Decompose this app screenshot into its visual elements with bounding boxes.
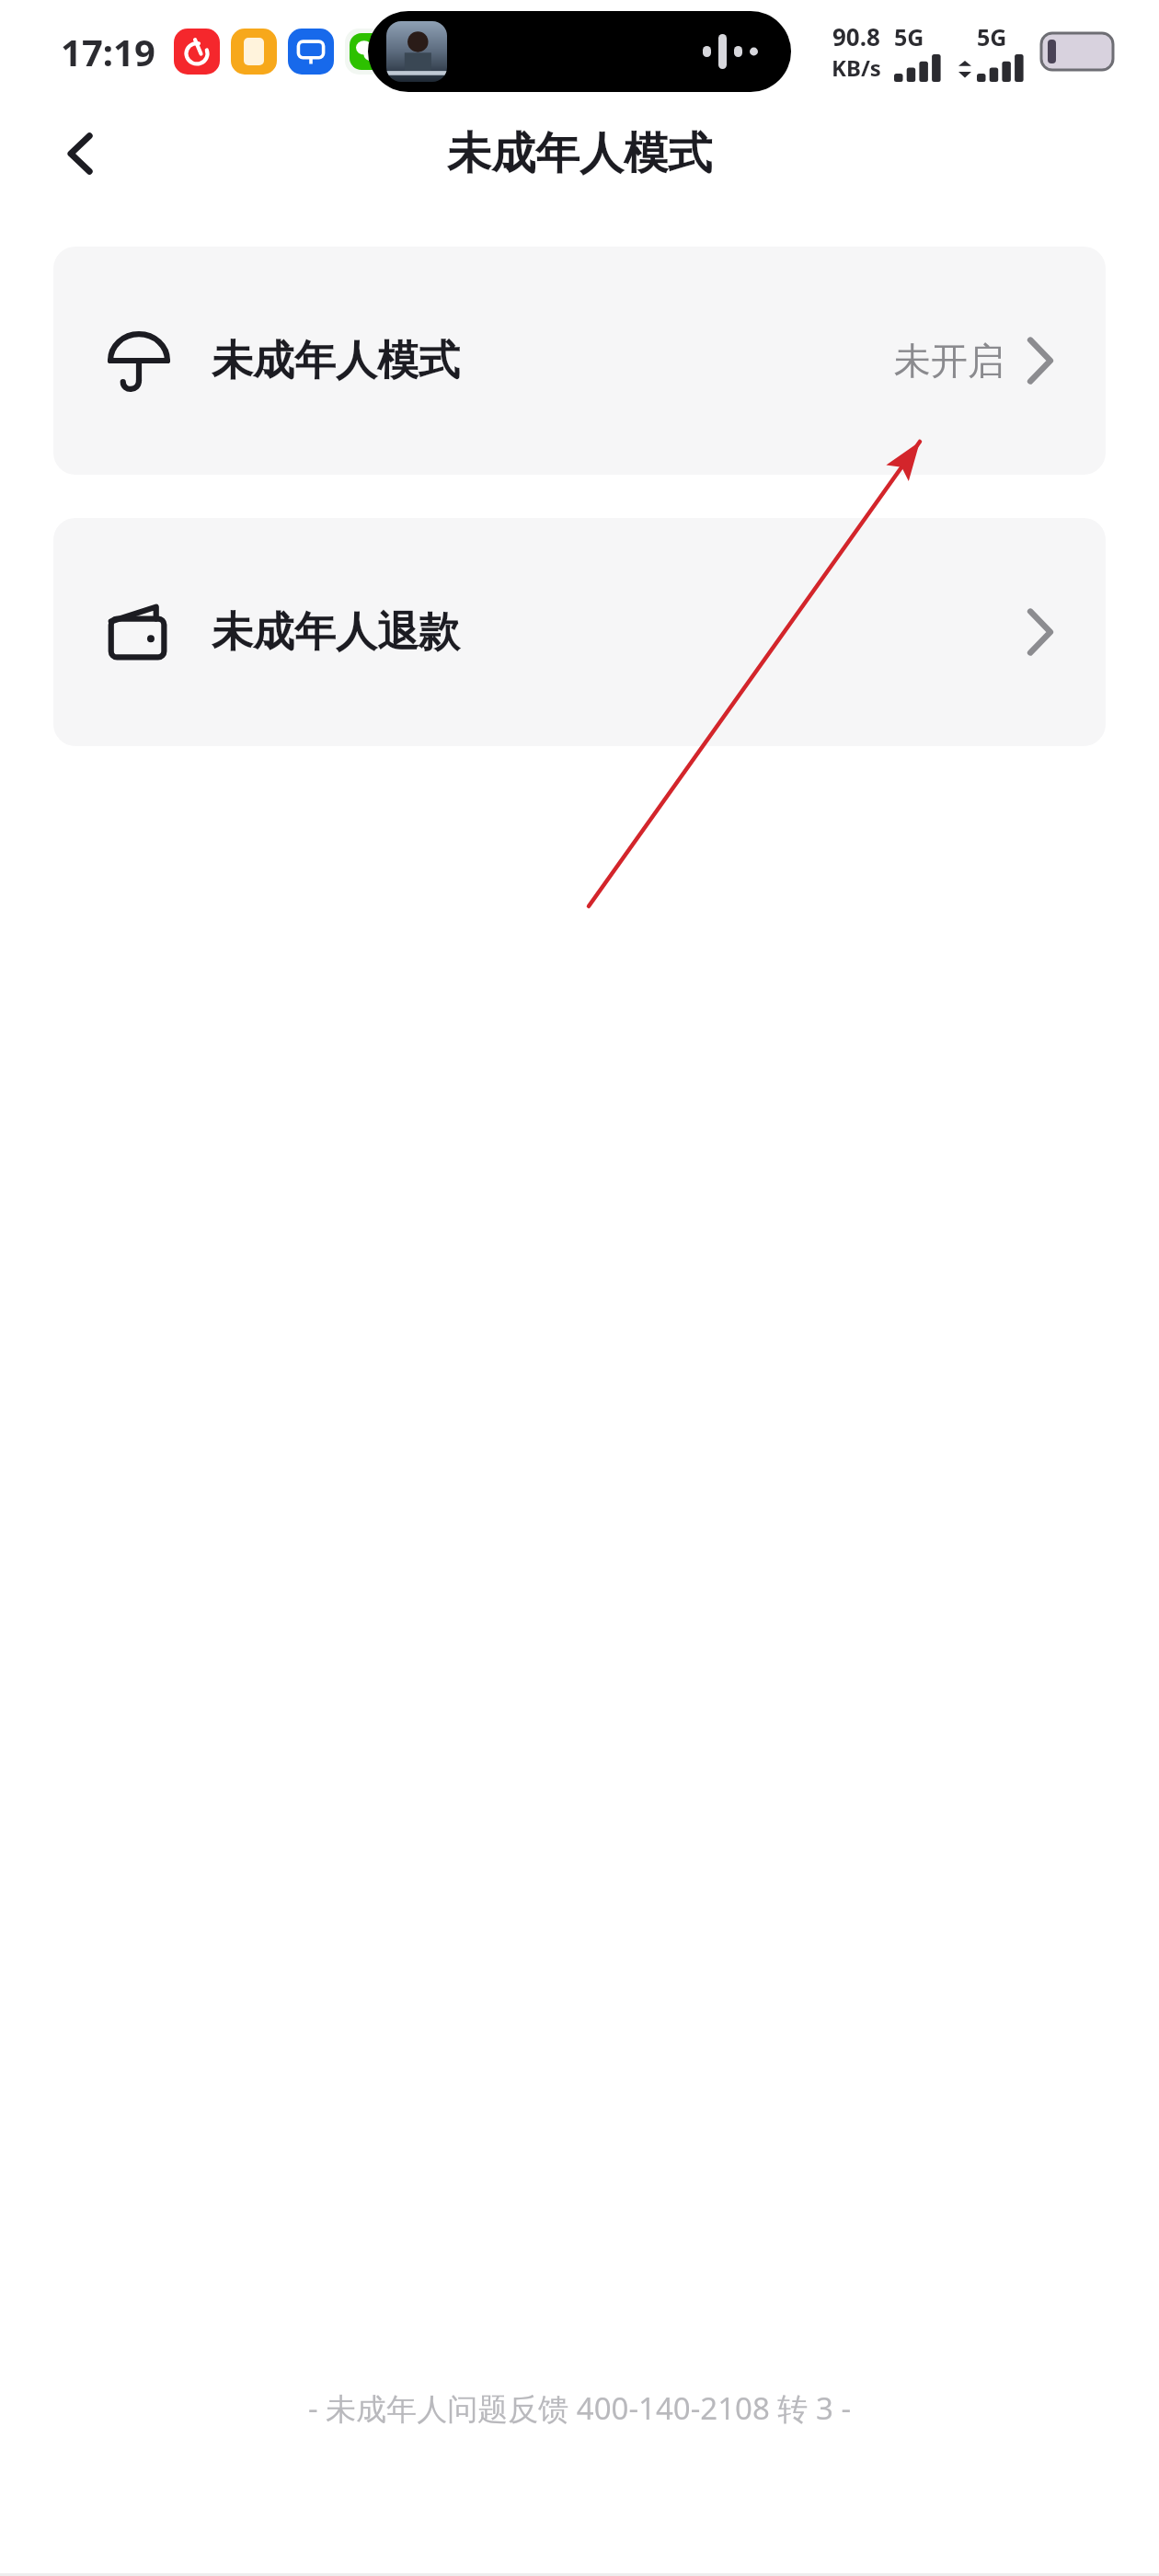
- button[interactable]: 未成年人退款: [53, 518, 1106, 746]
- button[interactable]: 未成年人模式: [53, 247, 1106, 475]
- staticText: 未开启: [894, 338, 1004, 384]
- staticText: 5G: [977, 21, 1007, 52]
- staticText: 未成年人退款: [212, 606, 1025, 659]
- staticText: 未成年人模式: [0, 126, 1159, 181]
- staticText: 17:19: [61, 27, 155, 76]
- staticText: 5G: [894, 21, 924, 52]
- button[interactable]: 返回: [37, 109, 125, 198]
- staticText: 90.8: [832, 20, 880, 52]
- staticText: 未成年人模式: [212, 335, 894, 387]
- staticText: KB/s: [832, 52, 881, 83]
- staticText: - 未成年人问题反馈 400-140-2108 转 3 -: [0, 2387, 1159, 2429]
